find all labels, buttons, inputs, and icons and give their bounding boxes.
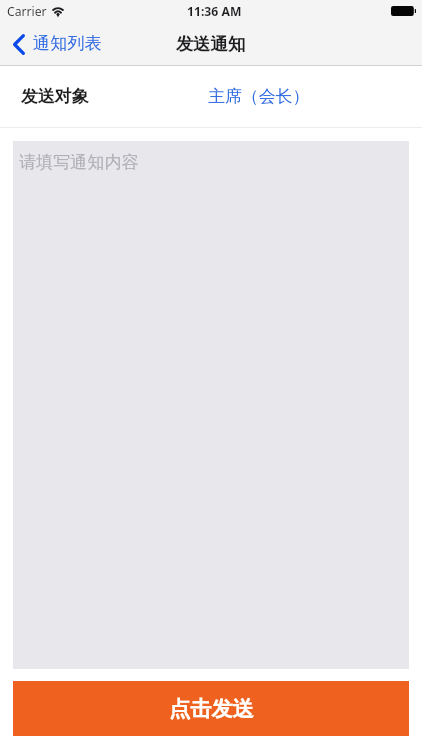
button[interactable]: 点击发送 — [13, 681, 409, 736]
staticText: 11:36 AM — [187, 3, 242, 20]
staticText: 发送通知 — [176, 33, 246, 55]
staticText: 主席（会长） — [208, 86, 310, 107]
staticText: Carrier — [7, 3, 47, 20]
button[interactable]: Back — [0, 27, 112, 61]
other: Battery — [391, 6, 416, 16]
staticText: 点击发送 — [169, 696, 254, 723]
staticText: 通知列表 — [33, 32, 102, 54]
other: Back — [13, 34, 25, 55]
staticText: 发送对象 — [21, 86, 89, 107]
other: Wi-Fi — [51, 7, 65, 17]
staticText: 请填写通知内容 — [19, 152, 139, 174]
button[interactable]: 发送对象 — [0, 66, 422, 128]
